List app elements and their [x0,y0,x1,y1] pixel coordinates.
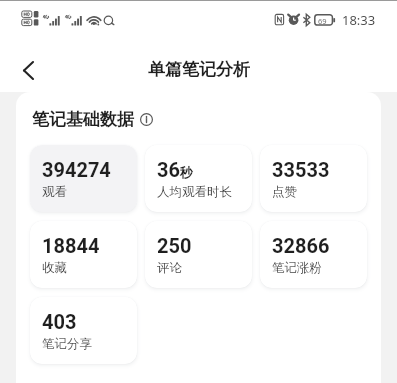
staticText: 33533 [272,158,330,181]
button[interactable]: 32866 [260,221,367,288]
staticText: 评论 [157,260,182,276]
staticText: 18:33 [342,11,376,29]
staticText: 403 [42,310,77,333]
staticText: 笔记分享 [42,336,92,352]
staticText: 收藏 [42,260,67,276]
staticText: 394274 [42,158,111,181]
button[interactable]: 403 [30,297,137,364]
staticText: 人均观看时长 [157,184,232,200]
button[interactable]: 18844 [30,221,137,288]
staticText: 36 [157,158,180,181]
staticText: 笔记基础数据 [32,109,134,130]
staticText: 观看 [42,184,67,200]
button[interactable]: 36 [145,145,252,212]
staticText: 250 [157,234,192,257]
button[interactable]: 394274 [30,145,137,212]
staticText: 秒 [180,164,193,180]
staticText: 32866 [272,234,330,257]
staticText: 18844 [42,234,100,257]
staticText: 点赞 [272,184,297,200]
staticText: 单篇笔记分析 [148,59,250,80]
button[interactable]: 33533 [260,145,367,212]
button[interactable]: Back [10,52,46,88]
staticText: 笔记涨粉 [272,260,322,276]
staticText: 69 [318,16,327,26]
button[interactable]: 250 [145,221,252,288]
